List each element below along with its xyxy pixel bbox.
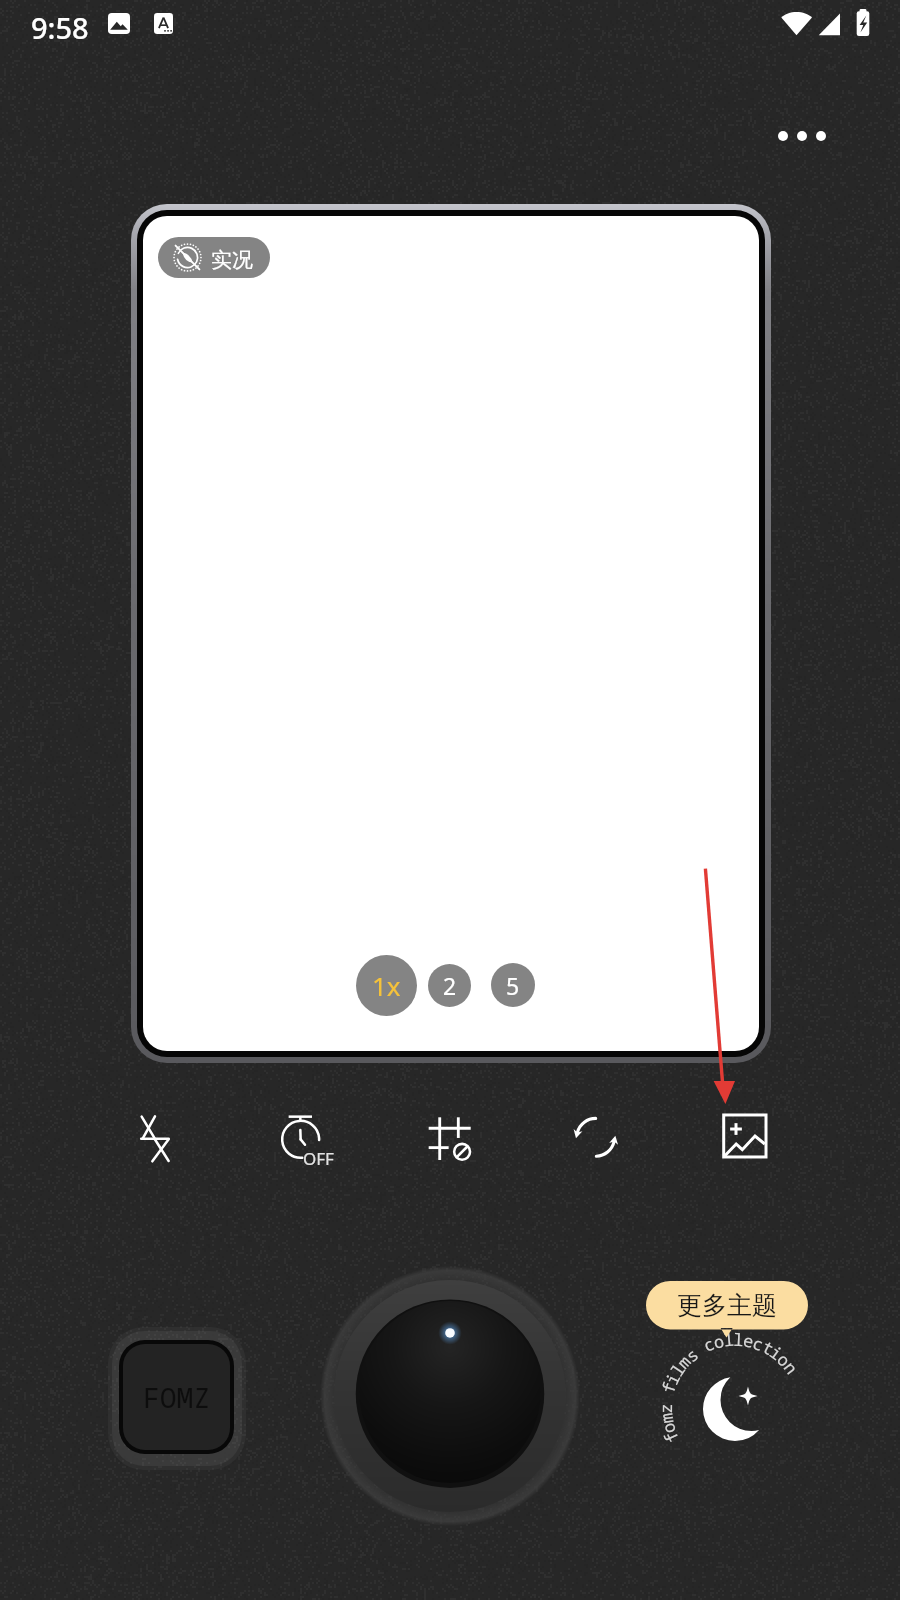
staticText: i bbox=[765, 1340, 787, 1365]
staticText: 更多主题 bbox=[677, 1290, 777, 1321]
button[interactable]: 实况 bbox=[158, 237, 270, 278]
staticText: 5 bbox=[506, 970, 520, 1001]
staticText: o bbox=[710, 1329, 727, 1354]
staticText: i bbox=[660, 1369, 685, 1389]
staticText: c bbox=[749, 1331, 767, 1356]
button[interactable]: 2 bbox=[428, 964, 471, 1007]
button[interactable]: Timer off bbox=[261, 1100, 341, 1180]
staticText: l bbox=[732, 1328, 744, 1351]
button[interactable]: 5 bbox=[491, 963, 535, 1007]
staticText: 9:58 bbox=[31, 8, 89, 47]
staticText: 1x bbox=[372, 968, 401, 1003]
button[interactable]: Add photo bbox=[705, 1100, 785, 1180]
staticText: m bbox=[654, 1411, 679, 1425]
staticText: s bbox=[680, 1343, 703, 1367]
staticText: FOMZ bbox=[143, 1378, 211, 1416]
staticText: l bbox=[722, 1327, 735, 1351]
staticText: OFF bbox=[303, 1147, 334, 1170]
button[interactable]: fomz films collection bbox=[646, 1322, 826, 1502]
staticText bbox=[654, 1390, 679, 1405]
button[interactable]: Shutter bbox=[320, 1266, 580, 1526]
button[interactable]: Switch camera bbox=[557, 1100, 637, 1180]
button[interactable]: Grid off bbox=[410, 1100, 490, 1180]
staticText bbox=[689, 1336, 710, 1362]
staticText: n bbox=[778, 1356, 803, 1379]
button[interactable]: More options bbox=[754, 108, 850, 164]
staticText: 2 bbox=[443, 970, 457, 1001]
staticText: o bbox=[656, 1420, 681, 1437]
staticText: e bbox=[741, 1328, 756, 1353]
staticText: l bbox=[665, 1359, 690, 1381]
staticText: z bbox=[654, 1403, 677, 1414]
staticText: f bbox=[656, 1379, 681, 1396]
staticText: f bbox=[658, 1427, 684, 1447]
staticText: m bbox=[671, 1350, 696, 1374]
button[interactable]: 更多主题 bbox=[646, 1281, 808, 1329]
button[interactable]: FOMZ bbox=[123, 1344, 230, 1450]
button[interactable]: 1x bbox=[356, 955, 417, 1016]
staticText: o bbox=[772, 1348, 796, 1372]
staticText: c bbox=[699, 1331, 718, 1357]
button[interactable]: Flash off bbox=[116, 1100, 196, 1180]
staticText: 实况 bbox=[211, 247, 253, 273]
staticText: t bbox=[758, 1335, 778, 1360]
